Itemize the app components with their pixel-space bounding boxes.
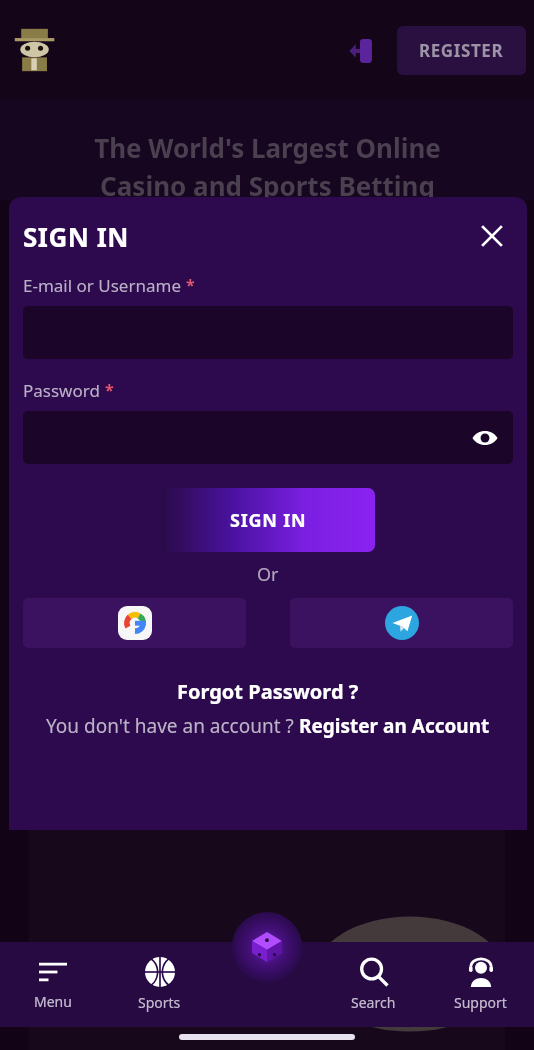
- button[interactable]: Search: [320, 942, 427, 1027]
- staticText: SIGN IN: [230, 508, 307, 533]
- staticText: Password: [23, 379, 100, 402]
- staticText: The World's Largest Online Casino and Sp…: [94, 130, 441, 200]
- button[interactable]: Sign in with Google: [23, 598, 246, 648]
- button[interactable]: Close: [471, 215, 513, 257]
- button[interactable]: Show password: [465, 418, 505, 458]
- staticText: E-mail or Username: [23, 274, 181, 297]
- staticText: SIGN IN: [23, 219, 129, 254]
- staticText: Menu: [34, 992, 72, 1011]
- staticText: You don't have an account ?: [46, 713, 299, 739]
- staticText: Sports: [138, 993, 181, 1012]
- staticText: Search: [351, 993, 396, 1012]
- button[interactable]: Register an Account: [299, 713, 490, 739]
- button[interactable]: Forgot Password ?: [23, 678, 513, 705]
- button[interactable]: Sign in with Telegram: [290, 598, 513, 648]
- staticText: Support: [454, 993, 507, 1012]
- button[interactable]: Menu: [0, 942, 106, 1027]
- button[interactable]: Sports: [106, 942, 213, 1027]
- button[interactable]: Games: [232, 912, 302, 982]
- button[interactable]: Show password: [23, 411, 513, 464]
- staticText: Register an Account: [299, 713, 490, 739]
- button[interactable]: Support: [427, 942, 534, 1027]
- staticText: Forgot Password ?: [177, 678, 359, 705]
- button[interactable]: REGISTER: [397, 26, 526, 75]
- button[interactable]: Login: [339, 29, 383, 73]
- staticText: Or: [257, 562, 279, 587]
- staticText: *: [186, 274, 195, 296]
- button[interactable]: SIGN IN: [161, 488, 375, 552]
- staticText: REGISTER: [419, 39, 504, 62]
- staticText: *: [105, 379, 114, 401]
